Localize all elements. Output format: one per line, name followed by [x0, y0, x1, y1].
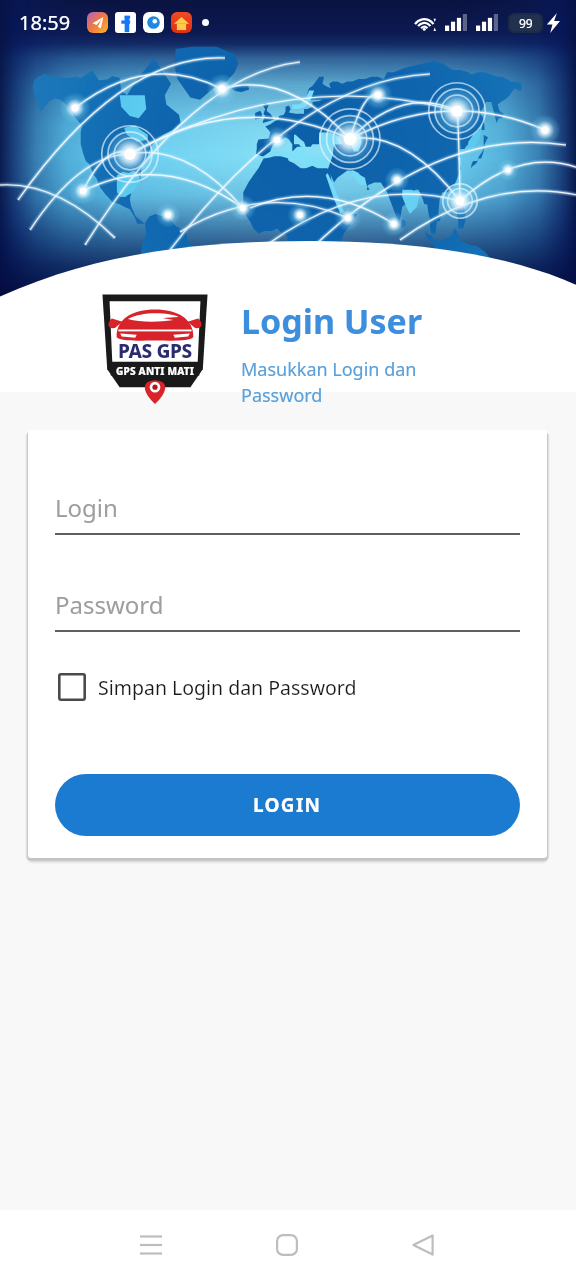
staticText: GPS ANTI MATI [116, 364, 195, 378]
button[interactable]: Login [55, 491, 520, 535]
staticText: Login User [241, 298, 423, 344]
button[interactable]: Simpan Login dan Password [55, 667, 520, 707]
staticText: 99 [519, 15, 533, 31]
staticText: Password [55, 588, 164, 621]
staticText: Login [55, 491, 118, 524]
button[interactable]: LOGIN [55, 774, 520, 836]
button[interactable]: Recents [118, 1212, 184, 1278]
button[interactable]: Back [390, 1212, 456, 1278]
staticText: LOGIN [253, 792, 322, 818]
button[interactable]: Password [55, 588, 520, 632]
staticText: PAS GPS [118, 338, 192, 364]
staticText: Masukkan Login dan Password [241, 357, 441, 408]
staticText: 18:59 [19, 9, 71, 36]
button[interactable]: Home [254, 1212, 320, 1278]
staticText: Simpan Login dan Password [98, 674, 357, 701]
